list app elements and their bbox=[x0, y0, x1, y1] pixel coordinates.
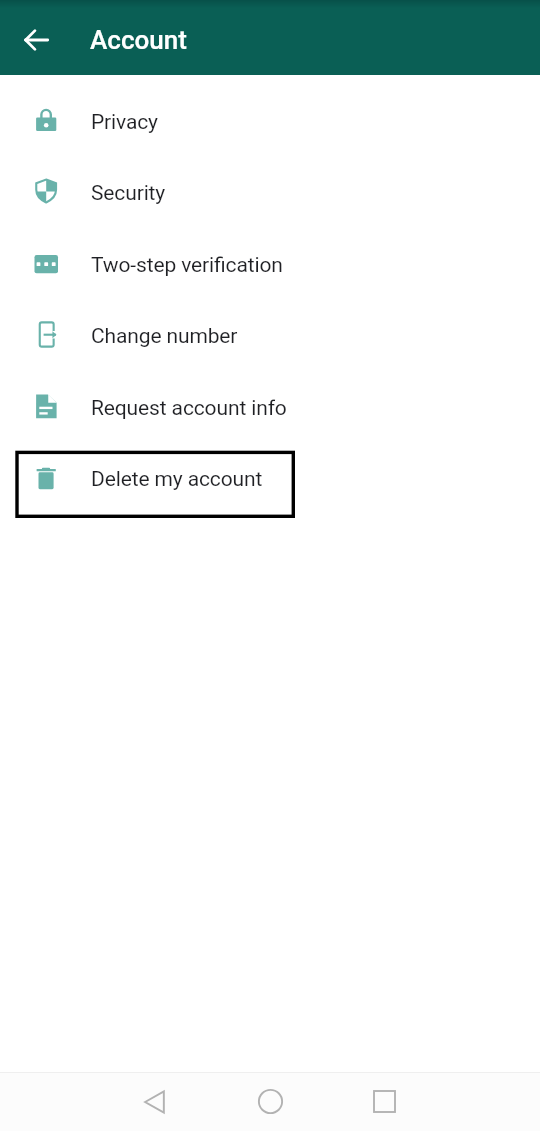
staticText: Change number bbox=[91, 324, 238, 349]
staticText: Privacy bbox=[91, 110, 158, 135]
staticText: Account bbox=[90, 25, 187, 55]
button[interactable]: Two-step verification bbox=[0, 229, 540, 301]
staticText: Two-step verification bbox=[91, 253, 283, 278]
button[interactable]: Home bbox=[213, 1072, 329, 1131]
button[interactable]: Recent apps bbox=[329, 1072, 445, 1131]
button[interactable]: Request account info bbox=[0, 372, 540, 444]
button[interactable]: Back bbox=[97, 1072, 213, 1131]
button[interactable]: Security bbox=[0, 157, 540, 229]
staticText: Delete my account bbox=[91, 467, 263, 492]
staticText: Security bbox=[91, 181, 166, 206]
staticText: Request account info bbox=[91, 396, 287, 421]
button[interactable]: Change number bbox=[0, 300, 540, 372]
button[interactable]: Privacy bbox=[0, 86, 540, 158]
button[interactable]: Delete my account bbox=[0, 443, 540, 515]
button[interactable]: Back bbox=[0, 5, 72, 75]
